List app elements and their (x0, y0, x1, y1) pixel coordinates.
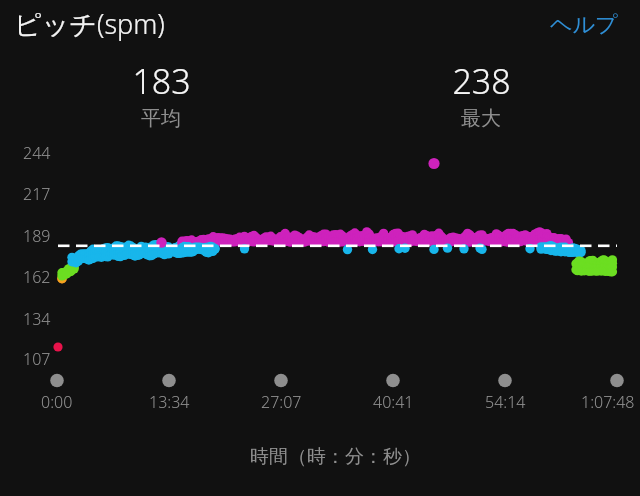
staticText: 238 (452, 58, 511, 100)
staticText: 平均 (141, 106, 181, 131)
staticText: 13:34 (149, 391, 190, 413)
staticText: 107 (23, 348, 51, 370)
staticText: 183 (132, 58, 191, 100)
staticText: 40:41 (373, 391, 414, 413)
staticText: 時間（時：分：秒） (250, 445, 421, 469)
staticText: 最大 (461, 106, 501, 131)
staticText: 1:07:48 (581, 391, 635, 413)
staticText: 162 (23, 266, 51, 288)
button[interactable]: ヘルプ (528, 8, 618, 42)
staticText: 189 (23, 225, 51, 247)
staticText: 54:14 (485, 391, 526, 413)
staticText: 244 (23, 142, 51, 164)
staticText: 27:07 (261, 391, 302, 413)
staticText: 134 (23, 308, 51, 330)
staticText: ヘルプ (550, 11, 618, 39)
staticText: 0:00 (41, 391, 73, 413)
staticText: ピッチ(spm) (14, 5, 165, 42)
staticText: 217 (23, 183, 51, 205)
